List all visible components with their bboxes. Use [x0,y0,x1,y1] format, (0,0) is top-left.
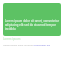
staticText: Lorem ipsum dolor sit amet, consectetur … [5,19,61,31]
button[interactable]: Lorem ipsum dolor sit amet, consectetur … [3,3,61,36]
button[interactable]: Lorem ipsum dolor sit amet consectetur e… [3,44,51,47]
staticText: Lorem ipsum [3,37,21,41]
